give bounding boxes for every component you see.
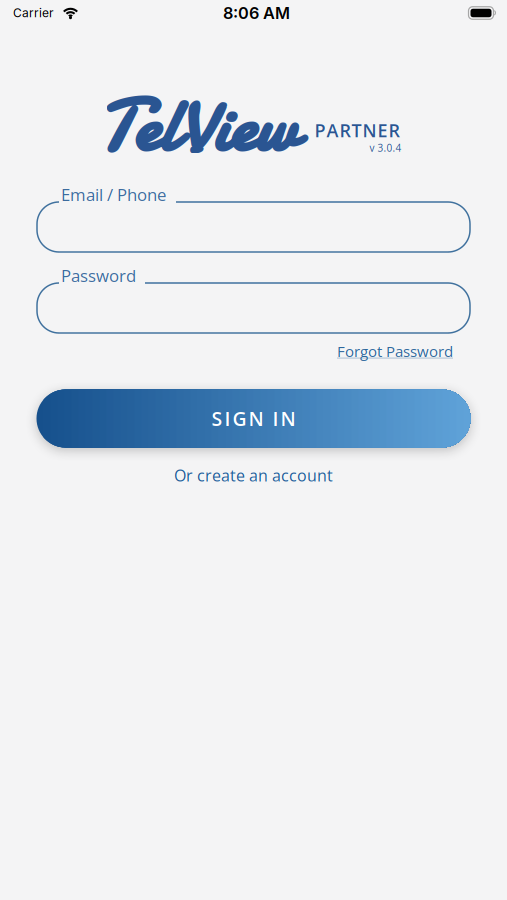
- staticText: Password: [61, 264, 136, 287]
- button[interactable]: Or create an account: [174, 464, 333, 486]
- staticText: Forgot Password: [337, 341, 453, 361]
- staticText: S I G N I N: [211, 405, 295, 432]
- button[interactable]: Forgot Password: [337, 341, 453, 361]
- staticText: TelView: [97, 76, 296, 177]
- staticText: 8:06 AM: [223, 3, 290, 23]
- staticText: Or create an account: [174, 464, 333, 486]
- staticText: v 3.0.4: [369, 141, 401, 155]
- button[interactable]: S I G N I N: [36, 389, 470, 447]
- staticText: Carrier: [13, 6, 54, 20]
- staticText: Email / Phone: [61, 183, 166, 206]
- staticText: PARTNER: [314, 118, 399, 142]
